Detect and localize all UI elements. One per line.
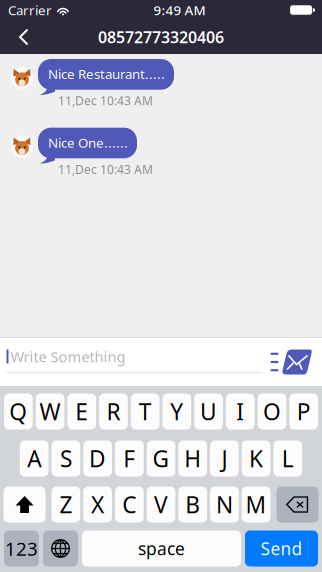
staticText: Send — [260, 537, 302, 560]
staticText: C — [122, 489, 136, 519]
staticText: Nice One...... — [48, 134, 128, 151]
button[interactable]: F — [115, 440, 144, 476]
staticText: Nice Restaurant..... — [48, 65, 165, 83]
button[interactable]: Z — [52, 486, 80, 522]
staticText: Z — [59, 489, 72, 519]
staticText: Y — [170, 396, 183, 426]
button[interactable]: Send message — [270, 349, 312, 374]
staticText: A — [27, 443, 41, 473]
staticText: R — [106, 396, 120, 426]
staticText: B — [185, 489, 200, 519]
staticText: space — [138, 537, 185, 560]
button[interactable]: J — [210, 440, 239, 476]
button[interactable]: Switch keyboard — [43, 530, 78, 566]
button[interactable]: Y — [162, 393, 191, 429]
button[interactable]: N — [210, 486, 239, 522]
button[interactable]: C — [115, 486, 144, 522]
staticText: 9:49 AM — [153, 1, 205, 19]
staticText: W — [40, 396, 61, 426]
staticText: 08572773320406 — [98, 26, 224, 48]
staticText: 123 — [5, 536, 38, 561]
staticText: X — [91, 489, 104, 519]
button[interactable]: T — [131, 393, 159, 429]
button[interactable]: R — [99, 393, 128, 429]
staticText: Write Something — [10, 347, 125, 366]
staticText: S — [60, 443, 72, 473]
staticText: J — [221, 443, 227, 473]
staticText: Q — [9, 396, 27, 426]
staticText: T — [139, 396, 152, 426]
button[interactable]: D — [83, 440, 112, 476]
button[interactable]: I — [226, 393, 255, 429]
staticText: N — [216, 489, 233, 519]
staticText: F — [123, 443, 135, 473]
button[interactable]: L — [273, 440, 302, 476]
button[interactable]: Shift — [4, 486, 46, 522]
staticText: D — [89, 443, 106, 473]
button[interactable]: O — [258, 393, 286, 429]
button[interactable]: Send — [245, 530, 318, 566]
button[interactable]: E — [67, 393, 96, 429]
button[interactable]: H — [178, 440, 207, 476]
button[interactable]: M — [242, 486, 270, 522]
button[interactable]: B — [178, 486, 207, 522]
button[interactable]: W — [36, 393, 64, 429]
staticText: G — [152, 443, 169, 473]
staticText: P — [297, 396, 311, 426]
button[interactable]: Q — [4, 393, 33, 429]
staticText: K — [249, 443, 263, 473]
button[interactable]: X — [83, 486, 112, 522]
staticText: I — [236, 396, 244, 426]
staticText: O — [263, 396, 281, 426]
button[interactable]: space — [82, 530, 241, 566]
staticText: H — [184, 443, 201, 473]
button[interactable]: U — [194, 393, 223, 429]
button[interactable]: S — [52, 440, 80, 476]
button[interactable]: 123 — [4, 530, 39, 566]
button[interactable]: Back — [0, 20, 44, 54]
button[interactable]: G — [147, 440, 175, 476]
staticText: U — [200, 396, 217, 426]
staticText: Carrier — [8, 1, 52, 19]
staticText: 11,Dec 10:43 AM — [58, 93, 153, 109]
staticText: 11,Dec 10:43 AM — [58, 161, 153, 177]
staticText: E — [75, 396, 88, 426]
staticText: V — [154, 489, 168, 519]
staticText: M — [246, 489, 267, 519]
button[interactable]: P — [289, 393, 318, 429]
button[interactable]: V — [147, 486, 175, 522]
button[interactable]: A — [20, 440, 49, 476]
staticText: L — [282, 443, 294, 473]
button[interactable]: Delete — [276, 486, 318, 522]
button[interactable]: K — [242, 440, 270, 476]
